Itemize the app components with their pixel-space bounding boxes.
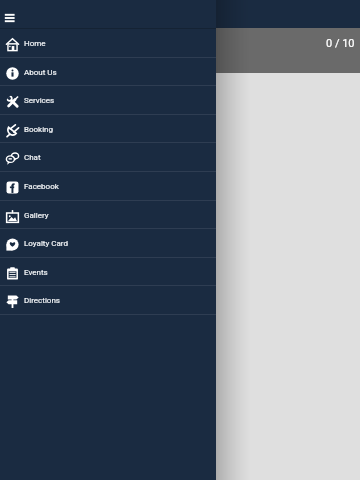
staticText: Services [24, 96, 55, 105]
button[interactable]: Chat [0, 143, 216, 171]
button[interactable]: Open navigation menu [3, 11, 21, 23]
staticText: Gallery [24, 211, 49, 220]
button[interactable]: Booking [0, 115, 216, 143]
staticText: Facebook [24, 182, 59, 191]
staticText: Chat [24, 153, 41, 162]
button[interactable]: Loyalty Card [0, 229, 216, 257]
staticText: Booking [24, 125, 54, 134]
staticText: About Us [24, 68, 57, 77]
button[interactable]: Home [0, 29, 216, 57]
staticText: Events [24, 268, 48, 277]
button[interactable]: Services [0, 86, 216, 114]
staticText: Home [24, 39, 46, 48]
button[interactable]: About Us [0, 58, 216, 86]
button[interactable]: Directions [0, 286, 216, 314]
staticText: Loyalty Card [24, 239, 68, 248]
button[interactable]: Facebook [0, 172, 216, 200]
staticText: Directions [24, 296, 60, 305]
staticText: 0 / 10 [326, 37, 355, 50]
button[interactable]: Gallery [0, 201, 216, 229]
button[interactable]: Events [0, 258, 216, 286]
